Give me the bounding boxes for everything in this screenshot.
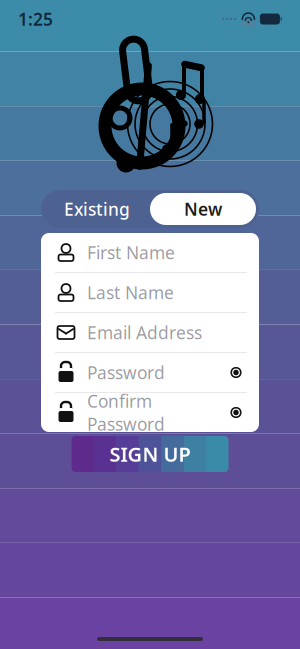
staticText: 1:25 xyxy=(18,7,53,30)
button[interactable]: Email Address xyxy=(41,313,259,352)
button[interactable]: Password xyxy=(41,353,259,392)
staticText: Existing xyxy=(64,197,130,220)
staticText: Confirm Password xyxy=(87,389,165,435)
staticText: SIGN UP xyxy=(109,441,190,467)
button[interactable]: First Name xyxy=(41,233,259,272)
staticText: Password xyxy=(87,361,165,384)
button[interactable]: Existing xyxy=(44,194,150,224)
button[interactable]: New xyxy=(150,193,256,225)
staticText: Email Address xyxy=(87,321,202,344)
button[interactable]: Last Name xyxy=(41,273,259,312)
staticText: New xyxy=(184,197,222,220)
button[interactable]: SIGN UP xyxy=(71,436,228,472)
button[interactable]: Confirm Password xyxy=(41,393,259,432)
staticText: Last Name xyxy=(87,281,174,304)
staticText: First Name xyxy=(87,241,175,264)
